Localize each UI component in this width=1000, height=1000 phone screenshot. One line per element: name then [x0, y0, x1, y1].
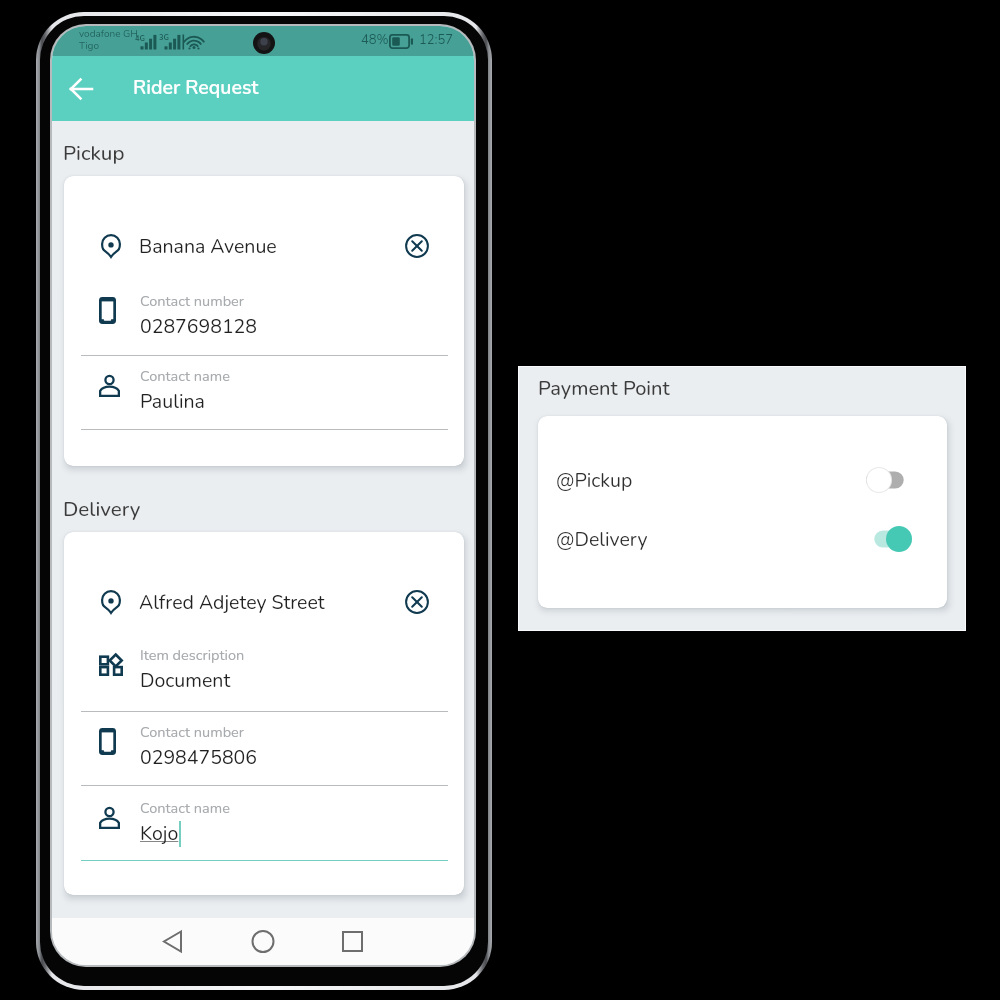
button[interactable]: Banana Avenue — [64, 220, 464, 272]
staticText: 3G — [159, 32, 170, 42]
button[interactable]: Item description — [64, 633, 464, 696]
staticText: 0287698128 — [140, 313, 258, 340]
staticText: 12:57 — [419, 31, 454, 49]
staticText: Payment Point — [538, 375, 670, 402]
staticText: Item description — [140, 645, 245, 665]
staticText: Contact name — [140, 366, 230, 386]
staticText: Kojo — [140, 820, 179, 847]
staticText: Contact name — [140, 798, 230, 818]
button[interactable]: Contact name — [64, 354, 464, 417]
button[interactable]: @Pickup — [538, 460, 947, 500]
button[interactable]: Alfred Adjetey Street — [64, 576, 464, 628]
staticText: Pickup — [63, 139, 125, 167]
staticText: Rider Request — [133, 74, 259, 101]
staticText: @Pickup — [556, 467, 633, 494]
button[interactable]: Back — [61, 69, 101, 109]
button[interactable]: Contact number — [64, 279, 464, 342]
staticText: Tigo — [79, 39, 100, 53]
button[interactable]: Remove address — [401, 586, 433, 618]
button[interactable]: Contact number — [64, 710, 464, 773]
staticText: 0298475806 — [140, 744, 258, 771]
staticText: Paulina — [140, 388, 205, 415]
staticText: Delivery — [63, 495, 141, 523]
staticText: Contact number — [140, 291, 244, 311]
staticText: 48% — [361, 31, 389, 49]
button[interactable]: Remove address — [401, 230, 433, 262]
button[interactable]: @Delivery — [538, 519, 947, 559]
staticText: 4G — [135, 33, 146, 43]
staticText: Contact number — [140, 722, 244, 742]
staticText: vodafone GH — [79, 27, 138, 41]
button[interactable]: Contact name — [64, 786, 464, 849]
staticText: Alfred Adjetey Street — [139, 589, 325, 616]
staticText: Banana Avenue — [139, 233, 277, 260]
staticText: Document — [140, 667, 231, 694]
staticText: @Delivery — [556, 526, 648, 553]
